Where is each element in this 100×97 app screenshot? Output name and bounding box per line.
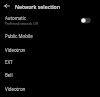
button[interactable]: Bell xyxy=(0,68,100,81)
staticText: Automatic xyxy=(5,15,27,21)
staticText: Videotron xyxy=(5,86,26,92)
button[interactable]: Public Mobile xyxy=(0,29,100,42)
button[interactable]: EXT xyxy=(0,55,100,68)
staticText: EXT xyxy=(5,59,13,65)
staticText: Network selection xyxy=(15,3,61,10)
staticText: Preferred network: Off xyxy=(5,22,38,26)
staticText: Bell xyxy=(5,72,13,78)
staticText: Videotron xyxy=(5,47,26,53)
button[interactable]: Videotron xyxy=(0,43,100,56)
button[interactable]: Back xyxy=(0,0,13,12)
button[interactable]: Automatic xyxy=(0,12,100,29)
staticText: Public Mobile xyxy=(5,33,33,39)
button[interactable]: Automatic network selection toggle xyxy=(81,12,95,29)
button[interactable]: Videotron xyxy=(0,82,100,95)
